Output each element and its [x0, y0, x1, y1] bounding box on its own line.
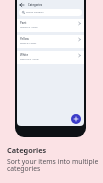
- button[interactable]: Back: [17, 0, 27, 9]
- staticText: Categories: [7, 145, 47, 155]
- button[interactable]: White: [17, 51, 84, 64]
- staticText: Disney & 2 other: [20, 42, 37, 45]
- button[interactable]: Add category: [71, 114, 81, 124]
- staticText: Swift suit & 1 other: [20, 58, 39, 61]
- staticText: Categories: [28, 3, 43, 7]
- staticText: Yellow: [20, 37, 29, 41]
- staticText: Search Category: [26, 11, 44, 14]
- button[interactable]: Search Category: [19, 9, 82, 16]
- staticText: comfort & 1 other: [20, 26, 38, 29]
- staticText: Sort your items into multiple categories: [7, 157, 101, 173]
- staticText: White: [20, 53, 29, 57]
- button[interactable]: Pant: [17, 19, 84, 32]
- button[interactable]: Yellow: [17, 35, 84, 48]
- staticText: Pant: [20, 21, 27, 25]
